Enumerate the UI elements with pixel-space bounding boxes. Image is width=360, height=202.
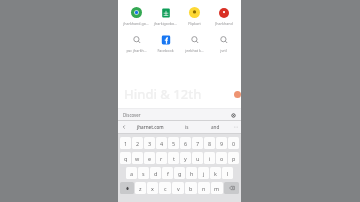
- staticText: jsrtl: [220, 48, 227, 53]
- staticText: o: [220, 155, 224, 162]
- staticText: c: [164, 185, 167, 192]
- staticText: h: [190, 170, 194, 177]
- staticText: y: [184, 155, 187, 162]
- staticText: g: [178, 170, 182, 177]
- staticText: 1: [124, 140, 128, 147]
- button[interactable]: jharkhand.go…: [121, 4, 151, 28]
- button[interactable]: 4: [156, 137, 167, 149]
- button[interactable]: Jharkhand: [209, 4, 238, 28]
- staticText: 6: [184, 140, 188, 147]
- staticText: q: [124, 155, 128, 162]
- button[interactable]: and: [201, 121, 230, 133]
- button[interactable]: Flipkart: [180, 4, 209, 28]
- staticText: m: [214, 185, 220, 192]
- staticText: Facebook: [157, 48, 174, 53]
- staticText: 9: [220, 140, 224, 147]
- button[interactable]: h: [186, 167, 197, 179]
- staticText: and: [211, 124, 220, 130]
- button[interactable]: Backspace: [224, 182, 239, 194]
- staticText: is: [185, 124, 189, 130]
- button[interactable]: c: [159, 182, 171, 194]
- staticText: x: [151, 185, 154, 192]
- button[interactable]: psc jharkh…: [121, 31, 151, 55]
- button[interactable]: a: [126, 167, 137, 179]
- button[interactable]: Keyboard settings: [229, 111, 237, 119]
- staticText: 5: [172, 140, 176, 147]
- staticText: Hindi & 12th months: [124, 85, 241, 103]
- button[interactable]: t: [168, 152, 179, 164]
- button[interactable]: Notification badge: [234, 91, 241, 98]
- staticText: 4: [160, 140, 164, 147]
- button[interactable]: is: [172, 121, 201, 133]
- button[interactable]: d: [150, 167, 161, 179]
- button[interactable]: jharnet.com: [129, 121, 172, 133]
- staticText: 2: [136, 140, 140, 147]
- staticText: jharnet.com: [137, 124, 164, 130]
- staticText: s: [142, 170, 145, 177]
- staticText: f: [167, 170, 169, 177]
- button[interactable]: 6: [180, 137, 191, 149]
- button[interactable]: l: [222, 167, 233, 179]
- staticText: 7: [196, 140, 200, 147]
- button[interactable]: jharkigovbo…: [151, 4, 180, 28]
- button[interactable]: o: [216, 152, 227, 164]
- button[interactable]: z: [135, 182, 146, 194]
- button[interactable]: s: [138, 167, 149, 179]
- staticText: psc jharkh…: [126, 48, 147, 53]
- button[interactable]: 0: [228, 137, 239, 149]
- staticText: w: [135, 155, 140, 162]
- button[interactable]: p: [228, 152, 239, 164]
- staticText: jeebhat k…: [185, 48, 204, 53]
- button[interactable]: r: [156, 152, 167, 164]
- button[interactable]: n: [198, 182, 210, 194]
- staticText: 3: [148, 140, 152, 147]
- button[interactable]: u: [192, 152, 203, 164]
- button[interactable]: jeebhat k…: [180, 31, 209, 55]
- button[interactable]: x: [147, 182, 158, 194]
- button[interactable]: v: [172, 182, 184, 194]
- staticText: Jharkhand: [215, 21, 233, 26]
- staticText: u: [196, 155, 200, 162]
- staticText: d: [154, 170, 158, 177]
- staticText: jharkigovbo…: [154, 21, 177, 26]
- staticText: p: [232, 155, 236, 162]
- button[interactable]: g: [174, 167, 185, 179]
- button[interactable]: 7: [192, 137, 203, 149]
- staticText: n: [202, 185, 206, 192]
- button[interactable]: Facebook: [151, 31, 180, 55]
- staticText: z: [139, 185, 142, 192]
- button[interactable]: y: [180, 152, 191, 164]
- button[interactable]: Shift: [120, 182, 134, 194]
- button[interactable]: 5: [168, 137, 179, 149]
- button[interactable]: 2: [132, 137, 143, 149]
- button[interactable]: Previous suggestions: [118, 121, 129, 133]
- staticText: l: [227, 170, 229, 177]
- staticText: 0: [232, 140, 236, 147]
- button[interactable]: k: [210, 167, 221, 179]
- staticText: r: [160, 155, 163, 162]
- button[interactable]: 9: [216, 137, 227, 149]
- staticText: v: [177, 185, 180, 192]
- staticText: i: [209, 155, 211, 162]
- button[interactable]: m: [211, 182, 223, 194]
- button[interactable]: b: [185, 182, 197, 194]
- button[interactable]: 8: [204, 137, 215, 149]
- staticText: t: [173, 155, 175, 162]
- staticText: 8: [208, 140, 212, 147]
- button[interactable]: jsrtl: [209, 31, 238, 55]
- staticText: b: [189, 185, 193, 192]
- button[interactable]: 3: [144, 137, 155, 149]
- staticText: Discover: [123, 112, 141, 118]
- button[interactable]: e: [144, 152, 155, 164]
- button[interactable]: w: [132, 152, 143, 164]
- button[interactable]: j: [198, 167, 209, 179]
- staticText: j: [203, 170, 205, 177]
- button[interactable]: q: [120, 152, 131, 164]
- staticText: Flipkart: [188, 21, 201, 26]
- button[interactable]: i: [204, 152, 215, 164]
- staticText: e: [148, 155, 152, 162]
- button[interactable]: 1: [120, 137, 131, 149]
- staticText: k: [214, 170, 217, 177]
- button[interactable]: f: [162, 167, 173, 179]
